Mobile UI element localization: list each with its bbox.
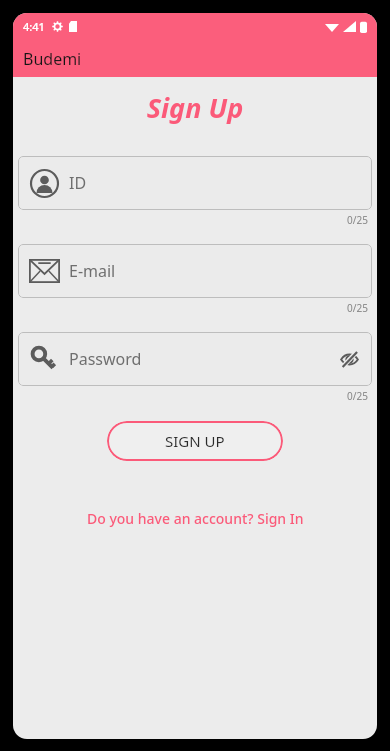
staticText: 0/25 xyxy=(18,213,368,227)
staticText: SIGN UP xyxy=(165,431,225,451)
staticText: 4:41 xyxy=(23,19,45,34)
button[interactable]: Do you have an account? Sign In xyxy=(13,509,377,528)
staticText: Budemi xyxy=(23,48,82,70)
button[interactable]: E-mail xyxy=(18,244,372,298)
staticText: 0/25 xyxy=(18,301,368,315)
staticText: Password xyxy=(69,348,142,370)
button[interactable]: ID xyxy=(18,156,372,210)
staticText: Sign Up xyxy=(13,89,377,126)
button[interactable]: SIGN UP xyxy=(107,421,283,461)
staticText: E-mail xyxy=(69,260,116,282)
staticText: Do you have an account? Sign In xyxy=(87,509,304,528)
button[interactable]: Toggle password visibility xyxy=(336,346,362,372)
staticText: ID xyxy=(69,172,87,194)
button[interactable]: Password xyxy=(18,332,372,386)
staticText: 0/25 xyxy=(18,389,368,403)
